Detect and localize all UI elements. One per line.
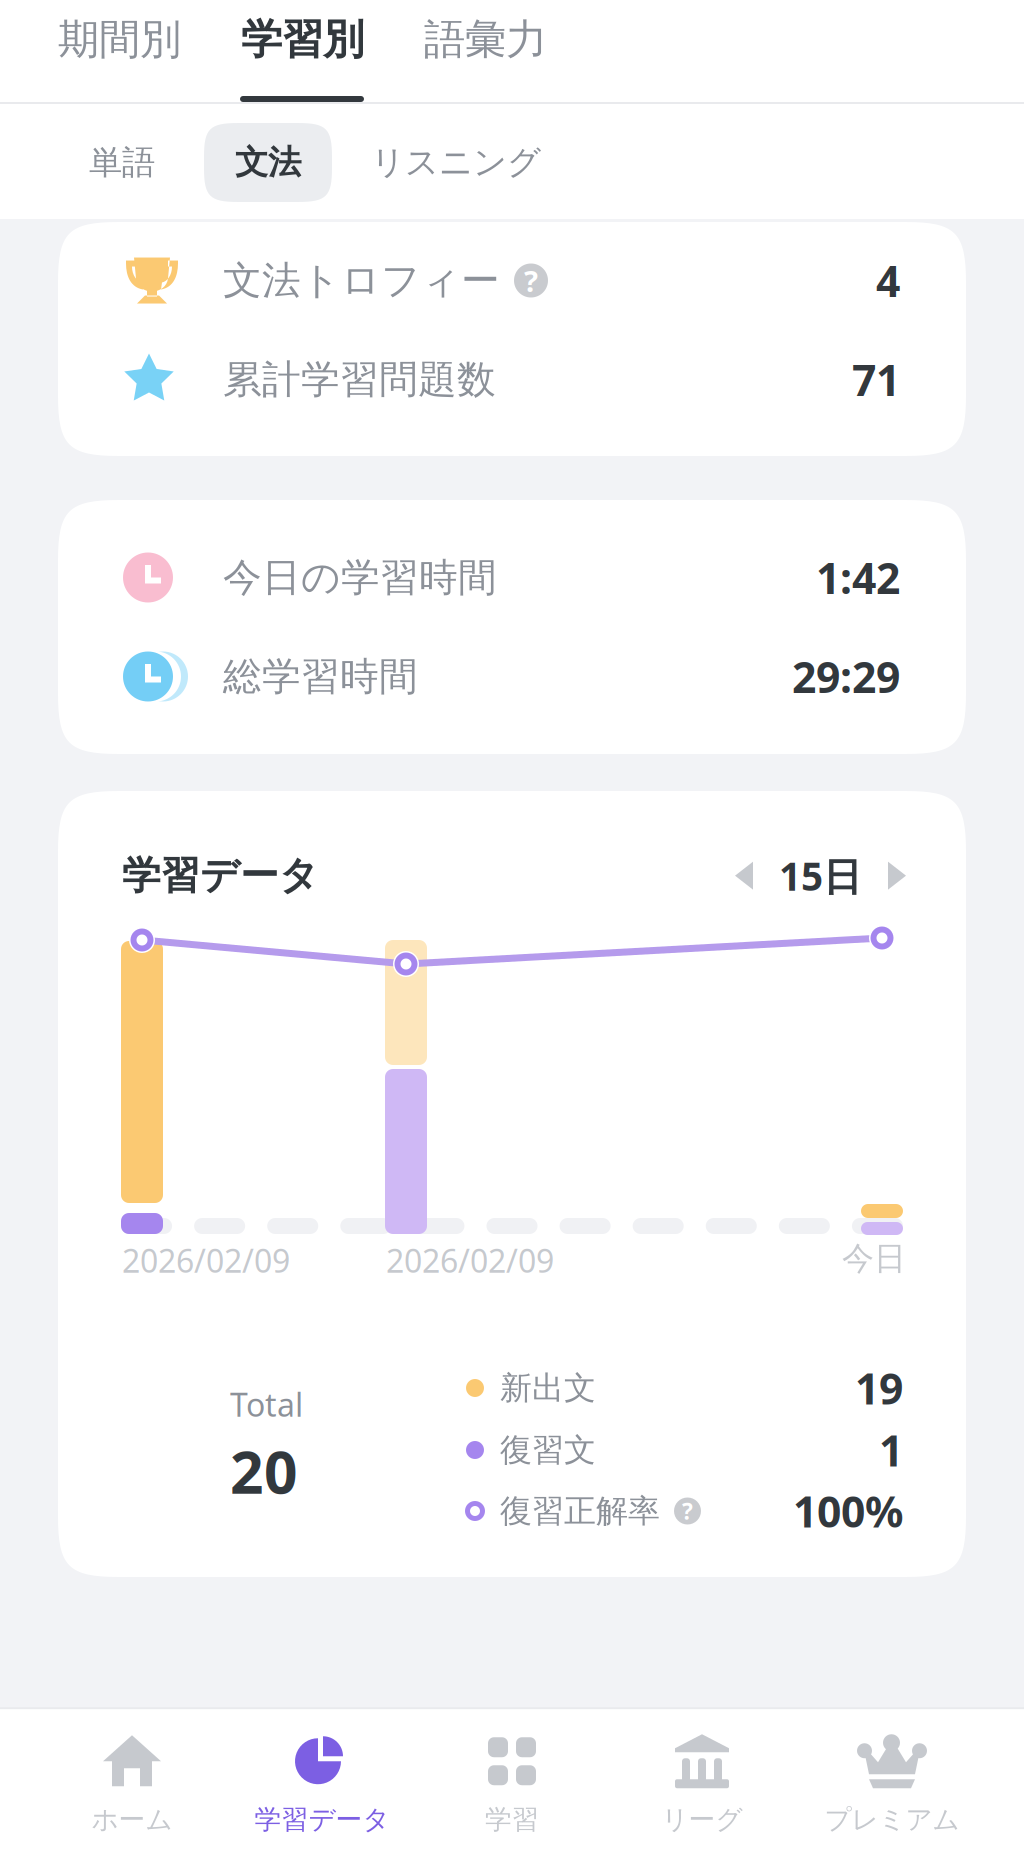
- staticText: 20: [230, 1432, 298, 1510]
- button[interactable]: 期間別: [42, 14, 197, 116]
- staticText: 19: [855, 1360, 903, 1416]
- staticText: プレミアム: [824, 1803, 959, 1836]
- staticText: 2026/02/09: [122, 1239, 290, 1281]
- staticText: 今日の学習時間: [223, 554, 497, 601]
- staticText: 学習: [485, 1803, 539, 1836]
- staticText: 学習データ: [122, 852, 319, 899]
- staticText: ?: [524, 261, 538, 300]
- button[interactable]: リスニング: [340, 123, 572, 202]
- staticText: 総学習時間: [223, 653, 418, 700]
- staticText: Total: [230, 1383, 303, 1425]
- staticText: 学習データ: [254, 1803, 389, 1836]
- staticText: 文法: [235, 142, 301, 183]
- button[interactable]: ホーム: [37, 1734, 227, 1836]
- staticText: 学習別: [241, 14, 364, 65]
- staticText: 語彙力: [424, 14, 547, 65]
- staticText: 期間別: [58, 14, 181, 65]
- staticText: 29:29: [792, 648, 900, 705]
- staticText: 71: [852, 351, 900, 408]
- button[interactable]: 学習データ: [227, 1734, 417, 1836]
- staticText: ?: [682, 1496, 693, 1526]
- button[interactable]: 語彙力: [408, 14, 563, 116]
- staticText: 単語: [89, 142, 155, 183]
- staticText: 2026/02/09: [386, 1239, 554, 1281]
- button[interactable]: リーグ: [607, 1734, 797, 1836]
- staticText: 新出文: [500, 1368, 596, 1408]
- button[interactable]: 単語: [58, 123, 186, 202]
- staticText: 文法トロフィー: [223, 257, 500, 304]
- staticText: ホーム: [91, 1803, 172, 1836]
- button[interactable]: プレミアム: [797, 1734, 987, 1836]
- staticText: 復習正解率: [500, 1491, 660, 1531]
- staticText: 100%: [793, 1483, 903, 1539]
- staticText: 復習文: [500, 1430, 596, 1470]
- button[interactable]: 学習別: [225, 14, 380, 116]
- staticText: 累計学習問題数: [223, 356, 496, 403]
- staticText: リスニング: [371, 142, 541, 183]
- staticText: リーグ: [661, 1803, 742, 1836]
- staticText: 15日: [779, 850, 862, 901]
- button[interactable]: 前の期間: [723, 851, 765, 901]
- button[interactable]: 学習: [417, 1734, 607, 1836]
- staticText: 1:42: [816, 549, 900, 606]
- button[interactable]: 文法: [204, 123, 332, 202]
- staticText: 4: [876, 252, 900, 309]
- staticText: 1: [879, 1422, 903, 1478]
- staticText: 今日: [842, 1239, 906, 1278]
- button[interactable]: 次の期間: [876, 851, 918, 901]
